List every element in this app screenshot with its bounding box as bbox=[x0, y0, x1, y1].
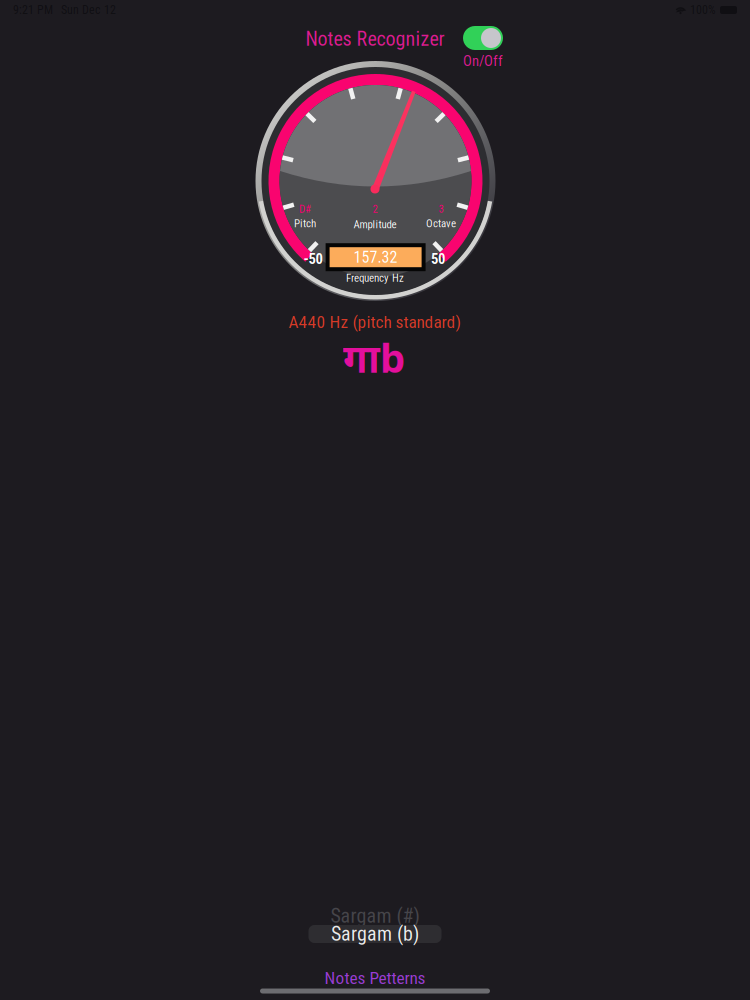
staticText: Sargam (#) bbox=[330, 904, 419, 928]
staticText: Sargam (b) bbox=[331, 922, 419, 946]
button[interactable]: Sargam (b) bbox=[308, 925, 441, 943]
staticText: Notes Petterns bbox=[324, 968, 425, 988]
staticText: Pitch bbox=[294, 217, 316, 230]
button[interactable]: Sargam (#) bbox=[330, 904, 419, 928]
staticText: A440 Hz (pitch standard) bbox=[288, 312, 461, 332]
staticText: 100% bbox=[690, 3, 716, 17]
staticText: 3 bbox=[438, 203, 443, 215]
staticText: Frequency Hz bbox=[346, 272, 404, 284]
staticText: 157.32 bbox=[354, 248, 398, 267]
staticText: 50 bbox=[431, 250, 445, 268]
staticText: गाb bbox=[343, 337, 405, 389]
button[interactable]: Notes Petterns bbox=[324, 968, 425, 988]
staticText: -50 bbox=[303, 250, 322, 268]
staticText: Amplitude bbox=[353, 218, 396, 231]
staticText: 2 bbox=[372, 203, 377, 215]
staticText: Octave bbox=[426, 217, 456, 230]
button[interactable]: On/Off toggle bbox=[463, 26, 503, 50]
staticText: Sun Dec 12 bbox=[61, 3, 116, 17]
staticText: D# bbox=[299, 203, 311, 215]
staticText: 9:21 PM bbox=[13, 3, 53, 17]
staticText: Notes Recognizer bbox=[305, 27, 444, 51]
staticText: On/Off bbox=[463, 52, 503, 70]
